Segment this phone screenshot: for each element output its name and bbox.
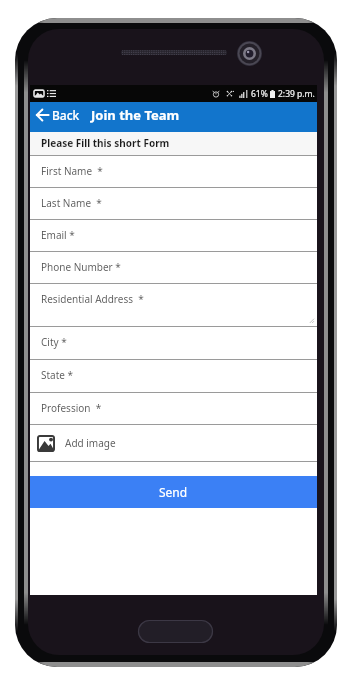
staticText: Please Fill this short Form <box>41 136 170 150</box>
staticText: 2:39 p.m. <box>278 88 315 100</box>
button[interactable]: Profession * <box>30 393 317 424</box>
staticText: Residential Address * <box>41 292 144 306</box>
button[interactable]: Last Name * <box>30 188 317 219</box>
button[interactable]: State * <box>30 360 317 392</box>
staticText: Last Name * <box>41 196 102 210</box>
staticText: Send <box>159 484 188 500</box>
button[interactable]: Add image <box>30 425 317 461</box>
button[interactable]: Send <box>30 476 317 508</box>
staticText: Join the Team <box>91 106 180 124</box>
staticText: Back <box>52 107 80 123</box>
staticText: Profession * <box>41 401 102 415</box>
staticText: First Name * <box>41 164 103 178</box>
staticText: Phone Number * <box>41 260 121 274</box>
button[interactable]: Email * <box>30 220 317 251</box>
staticText: 61% <box>251 88 268 100</box>
staticText: Add image <box>65 436 116 450</box>
button[interactable]: Residential Address * <box>30 284 317 326</box>
staticText: State * <box>41 368 74 382</box>
button[interactable]: First Name * <box>30 156 317 187</box>
button[interactable]: City * <box>30 327 317 359</box>
staticText: Email * <box>41 228 75 242</box>
button[interactable]: Back <box>30 103 84 127</box>
button[interactable]: Phone Number * <box>30 252 317 283</box>
staticText: City * <box>41 335 67 349</box>
